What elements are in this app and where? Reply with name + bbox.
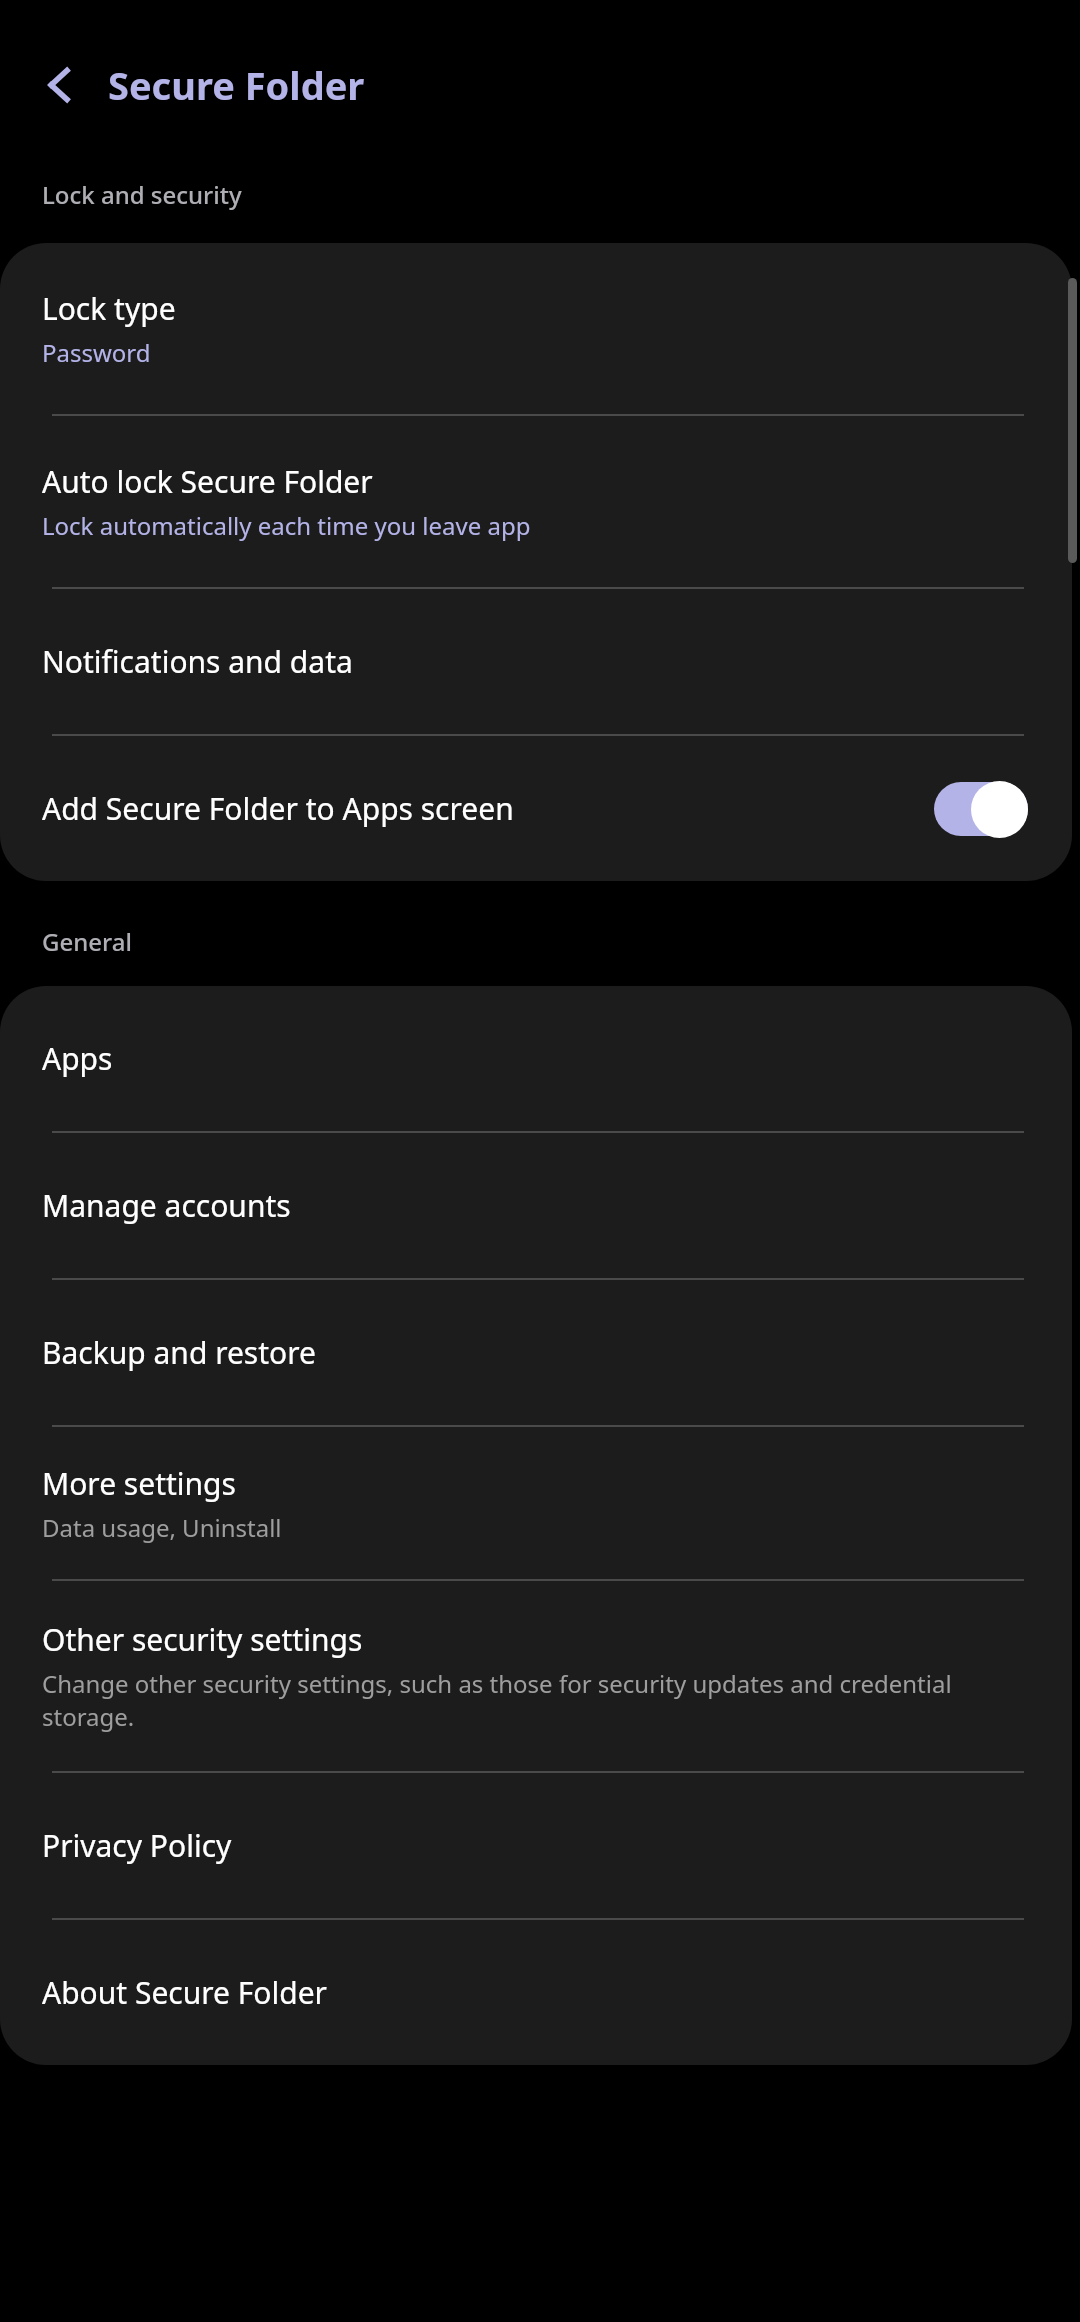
staticText: Other security settings <box>42 1619 363 1660</box>
staticText: More settings <box>42 1463 236 1504</box>
button[interactable]: More settings <box>0 1427 1072 1579</box>
button[interactable]: Notifications and data <box>0 589 1072 734</box>
button[interactable]: Add Secure Folder to Apps screen toggle <box>934 780 1030 838</box>
staticText: Backup and restore <box>42 1332 316 1373</box>
button[interactable]: Add Secure Folder to Apps screen <box>0 736 1072 881</box>
button[interactable]: Auto lock Secure Folder <box>0 416 1072 587</box>
staticText: Auto lock Secure Folder <box>42 461 373 502</box>
button[interactable]: About Secure Folder <box>0 1920 1072 2065</box>
staticText: Apps <box>42 1038 113 1079</box>
staticText: Notifications and data <box>42 641 353 682</box>
staticText: Change other security settings, such as … <box>42 1667 1030 1733</box>
staticText: Privacy Policy <box>42 1825 232 1866</box>
staticText: Manage accounts <box>42 1185 291 1226</box>
staticText: Lock type <box>42 288 176 329</box>
staticText: Secure Folder <box>108 59 365 111</box>
staticText: Password <box>42 336 151 369</box>
staticText: About Secure Folder <box>42 1972 327 2013</box>
button[interactable]: Privacy Policy <box>0 1773 1072 1918</box>
staticText: Lock and security <box>42 178 242 211</box>
button[interactable]: Backup and restore <box>0 1280 1072 1425</box>
staticText: Data usage, Uninstall <box>42 1511 282 1544</box>
staticText: Lock automatically each time you leave a… <box>42 509 531 542</box>
staticText: Add Secure Folder to Apps screen <box>42 788 514 829</box>
button[interactable]: Lock type <box>0 243 1072 414</box>
button[interactable]: Manage accounts <box>0 1133 1072 1278</box>
button[interactable]: Other security settings <box>0 1581 1072 1771</box>
button[interactable]: Apps <box>0 986 1072 1131</box>
staticText: General <box>42 925 132 958</box>
button[interactable]: Back <box>20 45 100 125</box>
